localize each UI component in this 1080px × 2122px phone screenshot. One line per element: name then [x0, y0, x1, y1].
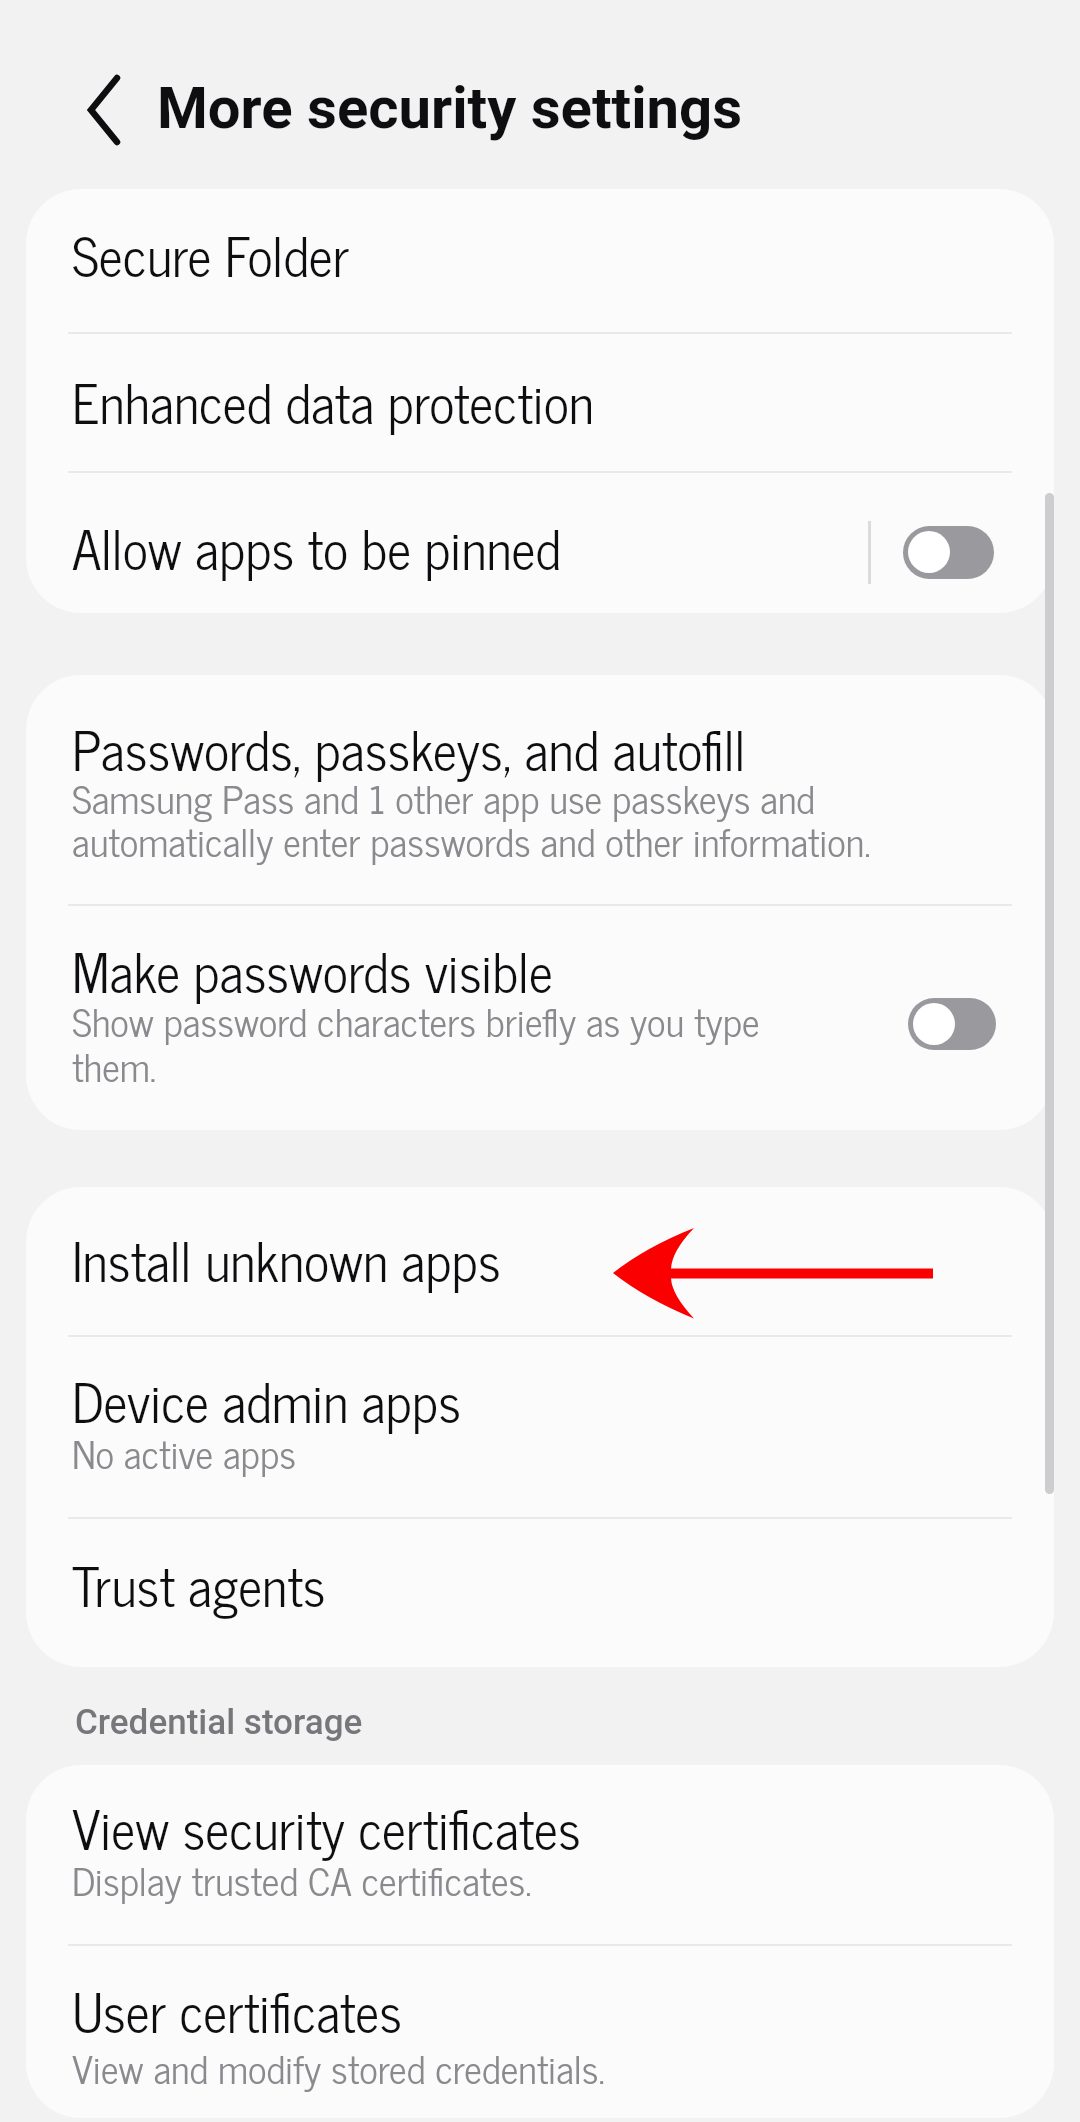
button[interactable]: Device admin apps	[26, 1337, 1054, 1518]
staticText: Secure Folder	[72, 210, 350, 297]
staticText: them.	[72, 1033, 157, 1097]
staticText: Make passwords visible	[72, 926, 553, 1013]
staticText: More security settings	[157, 74, 742, 142]
staticText: automatically enter passwords and other …	[72, 808, 871, 872]
staticText: Install unknown apps	[72, 1215, 501, 1302]
button[interactable]: Trust agents	[26, 1519, 1054, 1667]
staticText: Display trusted CA certificates.	[72, 1847, 532, 1911]
button[interactable]: Passwords, passkeys, and autofill	[26, 675, 1054, 905]
staticText: Passwords, passkeys, and autofill	[72, 704, 746, 791]
button[interactable]: Enhanced data protection	[26, 334, 1054, 472]
staticText: Device admin apps	[72, 1356, 461, 1443]
staticText: No active apps	[72, 1420, 296, 1484]
button[interactable]: Make passwords visible	[26, 906, 1054, 1130]
button[interactable]	[60, 50, 140, 160]
staticText: View security certificates	[72, 1783, 581, 1870]
staticText: Trust agents	[72, 1540, 326, 1627]
button[interactable]: Allow apps to be pinned	[26, 473, 1054, 613]
staticText: Allow apps to be pinned	[72, 503, 562, 590]
staticText: Credential storage	[75, 1702, 363, 1743]
button[interactable]: User certificates	[26, 1946, 1054, 2118]
button[interactable]: Secure Folder	[26, 189, 1054, 333]
staticText: View and modify stored credentials.	[72, 2035, 605, 2099]
button[interactable]: View security certificates	[26, 1765, 1054, 1945]
staticText: Enhanced data protection	[72, 357, 594, 444]
staticText: User certificates	[72, 1966, 402, 2053]
button[interactable]: Install unknown apps	[26, 1187, 1054, 1336]
staticText: Show password characters briefly as you …	[72, 988, 760, 1052]
staticText: Samsung Pass and 1 other app use passkey…	[72, 765, 816, 829]
